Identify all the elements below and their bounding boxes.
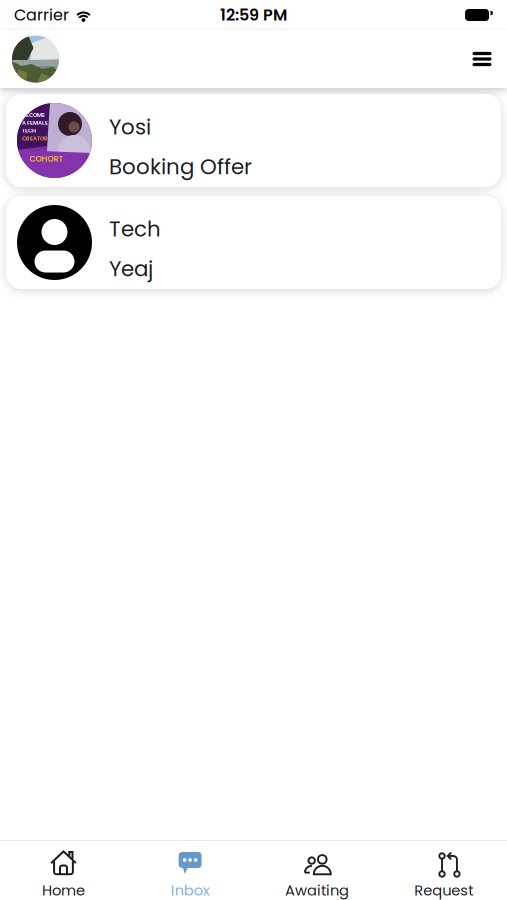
staticText: Carrier <box>14 4 69 26</box>
staticText: TECH <box>22 127 36 134</box>
button[interactable]: Request <box>380 841 507 900</box>
staticText: Inbox <box>171 880 210 900</box>
button[interactable]: Home <box>0 841 127 900</box>
staticText: BECOME <box>22 111 45 119</box>
staticText: 12:59 PM <box>220 4 287 26</box>
staticText: CREATOR <box>22 134 48 142</box>
staticText: A FEMALE <box>22 119 48 127</box>
staticText: COHORT <box>29 153 63 165</box>
staticText: Yosi <box>109 112 151 142</box>
staticText: Awaiting <box>285 880 349 900</box>
button[interactable]: Profile <box>12 35 59 82</box>
staticText: Booking Offer <box>109 152 252 182</box>
button[interactable]: Awaiting <box>253 841 380 900</box>
button[interactable]: Menu <box>460 37 504 81</box>
staticText: Request <box>414 880 473 900</box>
button[interactable]: BECOME <box>6 94 501 187</box>
staticText: Yeaj <box>109 254 153 284</box>
button[interactable]: Inbox <box>127 841 254 900</box>
button[interactable]: Tech <box>6 196 501 289</box>
staticText: Home <box>42 880 85 900</box>
staticText: Tech <box>109 214 161 244</box>
